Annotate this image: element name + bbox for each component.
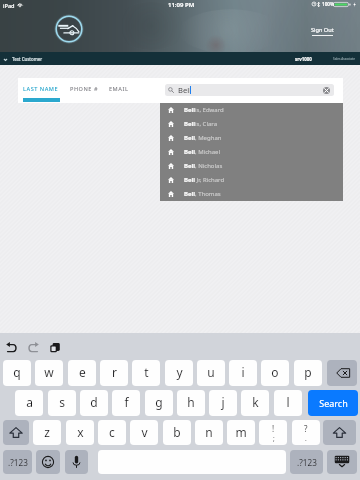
button[interactable]: Shift [3, 420, 29, 445]
staticText: q [13, 364, 21, 380]
staticText: Bell [184, 176, 195, 184]
button[interactable]: Bell [160, 103, 343, 117]
button[interactable]: n [195, 420, 223, 445]
button[interactable]: Sign Out [311, 26, 334, 36]
staticText: Bell [184, 134, 195, 142]
staticText: Bell [184, 120, 195, 128]
button[interactable]: y [165, 360, 193, 386]
button[interactable]: LAST NAME [22, 78, 60, 103]
button[interactable]: q [3, 360, 31, 386]
button[interactable]: Bell [160, 159, 343, 173]
staticText: Test Customer [12, 56, 43, 62]
button[interactable]: l [274, 390, 302, 416]
staticText: Bell [184, 106, 195, 114]
button[interactable]: Dealership logo [54, 14, 84, 44]
button[interactable]: u [197, 360, 225, 386]
button[interactable]: Paste [47, 340, 63, 356]
staticText: f [124, 394, 129, 410]
button[interactable]: h [177, 390, 205, 416]
button[interactable]: Hide keyboard [327, 450, 357, 474]
staticText: k [252, 394, 259, 410]
button[interactable]: Bell [160, 131, 343, 145]
button[interactable]: d [80, 390, 108, 416]
staticText: Sales Associate [333, 57, 355, 61]
staticText: Bell [184, 190, 195, 198]
staticText: 100% [322, 1, 335, 7]
staticText: Jr, Richard [195, 176, 225, 184]
button[interactable]: i [229, 360, 257, 386]
staticText: t [144, 364, 149, 380]
button[interactable]: EMAIL [108, 78, 130, 103]
button[interactable]: p [294, 360, 322, 386]
staticText: Bell [184, 148, 195, 156]
button[interactable]: b [163, 420, 191, 445]
staticText: , Meghan [195, 134, 222, 142]
button[interactable]: r [100, 360, 128, 386]
button[interactable]: .?123 [3, 450, 32, 474]
button[interactable]: x [66, 420, 94, 445]
button[interactable]: s [48, 390, 76, 416]
staticText: , Michael [195, 148, 221, 156]
staticText: LAST NAME [23, 85, 59, 93]
button[interactable]: w [35, 360, 63, 386]
button[interactable]: PHONE # [72, 78, 96, 103]
staticText: . [305, 434, 307, 443]
button[interactable]: ! [259, 420, 287, 445]
button[interactable]: z [33, 420, 61, 445]
button[interactable]: Search [308, 390, 358, 416]
staticText: s [59, 394, 65, 410]
button[interactable]: Bell [165, 84, 334, 96]
button[interactable]: Backspace [327, 360, 357, 386]
staticText: l [286, 394, 290, 410]
button[interactable]: f [112, 390, 140, 416]
button[interactable]: o [261, 360, 289, 386]
staticText: h [187, 394, 195, 410]
staticText: Search [319, 397, 348, 409]
staticText: i [241, 364, 245, 380]
staticText: .?123 [8, 457, 28, 468]
button[interactable]: Dictation [65, 450, 88, 474]
button[interactable]: c [98, 420, 126, 445]
button[interactable]: ? [292, 420, 320, 445]
staticText: u [207, 364, 215, 380]
staticText: is, Edward [195, 106, 224, 114]
button[interactable]: Bell [160, 145, 343, 159]
button[interactable]: k [241, 390, 269, 416]
button[interactable]: j [209, 390, 237, 416]
button[interactable]: a [15, 390, 43, 416]
staticText: o [271, 364, 279, 380]
button[interactable]: Bell [160, 117, 343, 131]
button[interactable]: Bell [160, 187, 343, 201]
staticText: j [221, 394, 225, 410]
staticText: .?123 [297, 457, 317, 468]
staticText: x [77, 424, 84, 440]
button[interactable]: Shift [323, 420, 356, 445]
button[interactable]: Bell [160, 173, 343, 187]
other: Expand store [3, 57, 8, 62]
button[interactable]: t [132, 360, 160, 386]
staticText: b [173, 424, 181, 440]
button[interactable]: m [227, 420, 255, 445]
button[interactable]: Undo [4, 340, 20, 356]
staticText: e [79, 364, 86, 380]
staticText: EMAIL [109, 85, 129, 93]
button[interactable]: Emoji [36, 450, 60, 474]
staticText: ! [272, 423, 275, 434]
staticText: m [235, 424, 247, 440]
button[interactable]: v [130, 420, 158, 445]
staticText: z [44, 424, 50, 440]
staticText: srv1000 [295, 56, 312, 62]
staticText: n [205, 424, 213, 440]
button[interactable]: e [68, 360, 96, 386]
staticText: is, Clara [195, 120, 218, 128]
staticText: g [155, 394, 163, 410]
staticText: r [112, 364, 117, 380]
other: Clear search [323, 87, 330, 94]
button[interactable]: Redo [25, 340, 41, 356]
staticText: , Nicholas [195, 162, 223, 170]
staticText: w [44, 364, 54, 380]
staticText: y [176, 364, 183, 380]
button[interactable]: g [145, 390, 173, 416]
button[interactable]: .?123 [290, 450, 323, 474]
